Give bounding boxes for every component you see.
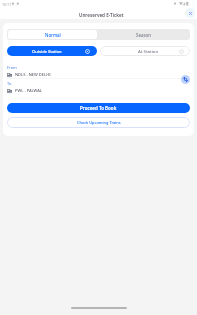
button[interactable]: Normal xyxy=(8,30,97,39)
staticText: Outside Station xyxy=(32,49,62,54)
staticText: At Station xyxy=(138,48,159,54)
staticText: To xyxy=(7,81,12,86)
staticText: Season xyxy=(136,32,152,38)
button[interactable]: Check Upcoming Trains xyxy=(7,117,190,128)
staticText: Unreserved E-Ticket xyxy=(79,12,124,18)
button[interactable]: Outside Station xyxy=(7,46,97,56)
staticText: Normal xyxy=(45,32,61,38)
button[interactable]: Season xyxy=(98,29,190,40)
staticText: Check Upcoming Trains xyxy=(77,120,121,125)
staticText: From xyxy=(7,65,17,70)
staticText: 10:11 xyxy=(2,2,12,7)
staticText: NDLS - NEW DELHI xyxy=(15,72,51,77)
button[interactable]: Close xyxy=(185,8,195,18)
staticText: PWL - PALWAL xyxy=(15,88,42,93)
button[interactable]: Proceed To Book xyxy=(7,103,190,113)
staticText: Proceed To Book xyxy=(80,105,117,111)
button[interactable]: At Station xyxy=(100,46,190,56)
button[interactable]: Swap stations xyxy=(181,75,190,84)
